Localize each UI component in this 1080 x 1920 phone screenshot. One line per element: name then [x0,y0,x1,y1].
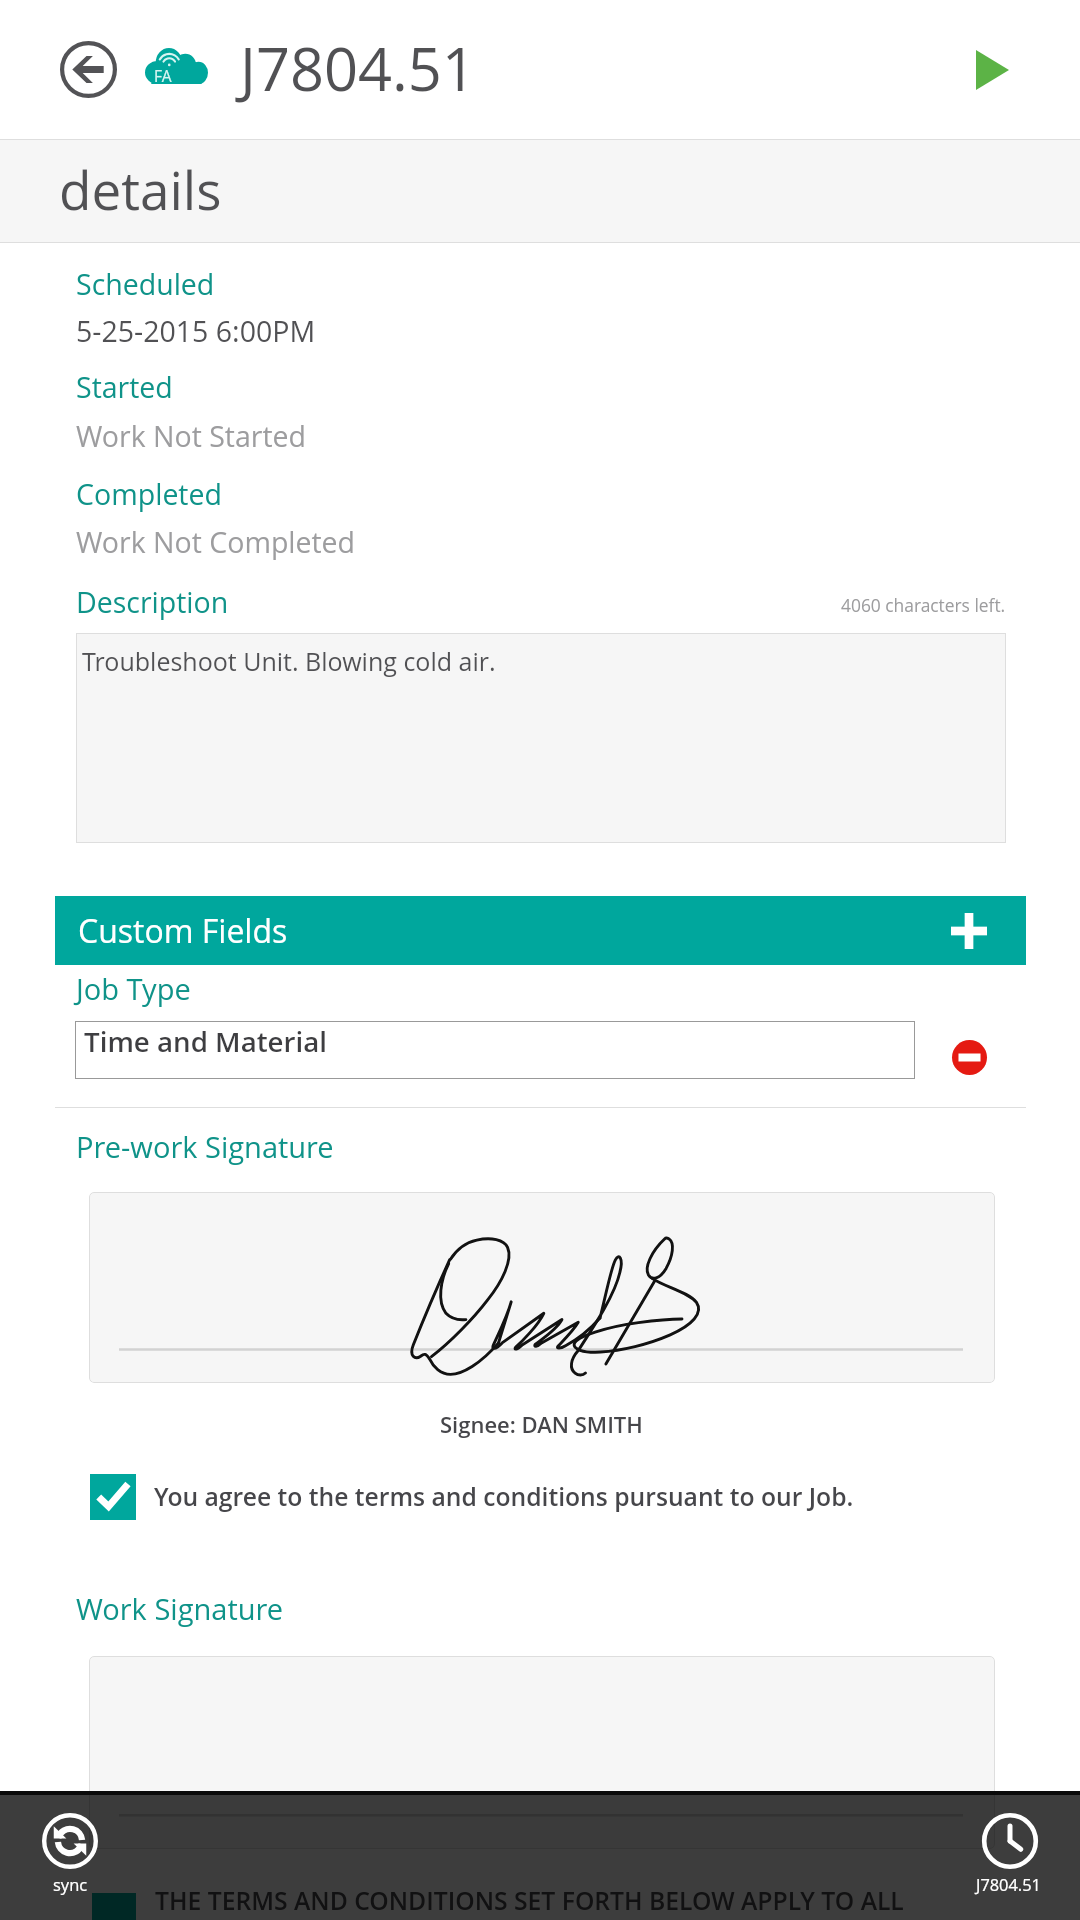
staticText: Started [76,368,173,407]
staticText: Work Not Started [76,417,306,456]
other: Timer [982,1813,1038,1869]
button[interactable]: Sync [24,1813,116,1913]
staticText: 4060 characters left. [841,593,1006,617]
button[interactable]: You agree to the terms and conditions pu… [90,1474,854,1520]
button[interactable]: Remove custom field [942,1030,996,1084]
staticText: details [59,153,222,225]
staticText: sync [53,1873,88,1895]
staticText: 5-25-2015 6:00PM [76,312,316,351]
staticText: Completed [76,475,222,514]
staticText: You agree to the terms and conditions pu… [154,1480,854,1514]
staticText: Time and Material [84,1022,327,1060]
staticText: THE TERMS AND CONDITIONS SET FORTH BELOW… [155,1884,904,1918]
staticText: Custom Fields [78,909,288,953]
staticText: Job Type [76,969,191,1008]
other: Sync [42,1813,98,1869]
button[interactable]: Custom Fields [55,896,1026,965]
staticText: Scheduled [76,265,215,304]
button[interactable]: Back [44,25,132,113]
staticText: Troubleshoot Unit. Blowing cold air. [82,644,496,678]
staticText: Signee: DAN SMITH [440,1409,643,1439]
staticText: J7804.51 [976,1873,1041,1895]
button[interactable]: Start job [944,22,1040,118]
staticText: Pre-work Signature [76,1127,334,1166]
staticText: FA [154,65,172,86]
staticText: Work Not Completed [76,523,356,562]
staticText: J7804.51 [240,27,476,108]
staticText: Description [76,583,229,622]
staticText: Work Signature [76,1589,284,1628]
button[interactable]: Timer [940,1813,1060,1913]
